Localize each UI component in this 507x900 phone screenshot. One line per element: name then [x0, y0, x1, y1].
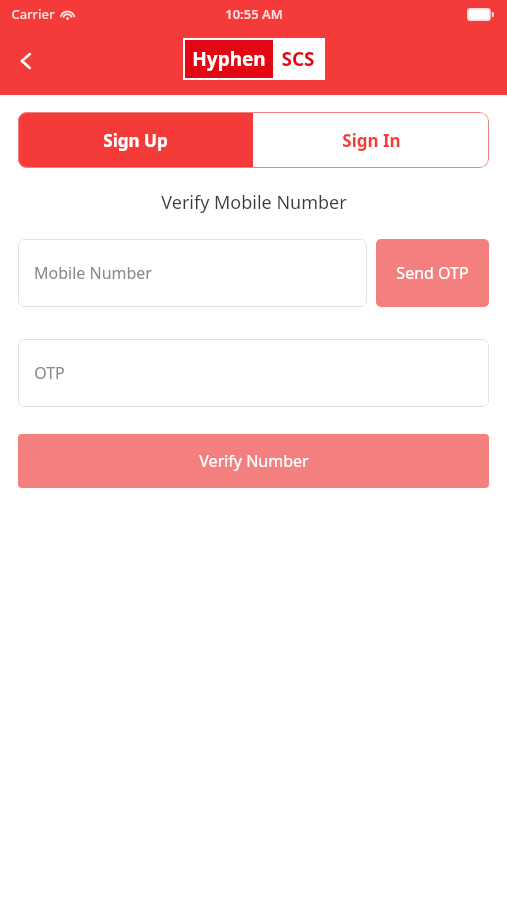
- button[interactable]: Verify Number: [18, 434, 489, 488]
- staticText: Verify Mobile Number: [161, 190, 347, 215]
- button[interactable]: Sign Up: [18, 112, 253, 168]
- button[interactable]: Sign In: [253, 112, 489, 168]
- staticText: Mobile Number: [34, 262, 152, 284]
- staticText: Hyphen: [192, 46, 266, 72]
- button[interactable]: Hyphen SCS logo: [185, 40, 323, 78]
- staticText: Sign Up: [103, 129, 168, 152]
- staticText: 10:55 AM: [225, 5, 283, 23]
- staticText: Verify Number: [199, 450, 309, 472]
- staticText: OTP: [34, 362, 65, 384]
- button[interactable]: Send OTP: [376, 239, 489, 307]
- staticText: Carrier: [11, 5, 55, 23]
- button[interactable]: OTP: [18, 339, 489, 407]
- staticText: Sign In: [342, 129, 401, 152]
- staticText: Send OTP: [396, 262, 469, 284]
- button[interactable]: Mobile Number: [18, 239, 367, 307]
- staticText: SCS: [281, 46, 315, 72]
- button[interactable]: Back: [0, 35, 52, 87]
